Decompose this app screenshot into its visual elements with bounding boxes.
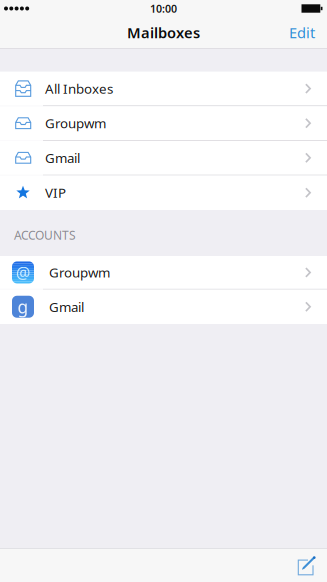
staticText: 10:00: [150, 1, 177, 16]
button[interactable]: All Inboxes: [0, 72, 327, 106]
button[interactable]: g: [0, 289, 327, 324]
staticText: g: [17, 295, 28, 318]
staticText: All Inboxes: [45, 80, 113, 97]
button[interactable]: Groupwm: [0, 106, 327, 141]
staticText: Gmail: [49, 298, 84, 316]
button[interactable]: VIP: [0, 175, 327, 210]
staticText: Edit: [289, 23, 315, 42]
staticText: Groupwm: [49, 264, 110, 281]
staticText: Mailboxes: [127, 23, 200, 42]
staticText: VIP: [45, 184, 66, 201]
button[interactable]: @: [0, 256, 327, 289]
button[interactable]: Edit: [281, 16, 323, 49]
staticText: @: [16, 262, 30, 283]
button[interactable]: Compose: [292, 549, 322, 581]
staticText: Groupwm: [45, 114, 106, 132]
staticText: ACCOUNTS: [14, 227, 76, 243]
button[interactable]: Gmail: [0, 141, 327, 175]
staticText: Gmail: [45, 149, 80, 167]
